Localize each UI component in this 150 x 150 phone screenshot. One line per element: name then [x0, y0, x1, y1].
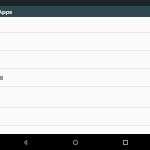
button[interactable]: Apps: [0, 6, 150, 17]
button[interactable]: [0, 108, 150, 126]
button[interactable]: [0, 17, 150, 33]
button[interactable]: [0, 33, 150, 51]
button[interactable]: [0, 69, 150, 87]
staticText: Apps: [0, 8, 13, 16]
button[interactable]: [0, 51, 150, 69]
button[interactable]: Back: [0, 134, 50, 150]
button[interactable]: Recent apps: [100, 134, 150, 150]
button[interactable]: [0, 87, 150, 108]
button[interactable]: Home: [50, 134, 100, 150]
